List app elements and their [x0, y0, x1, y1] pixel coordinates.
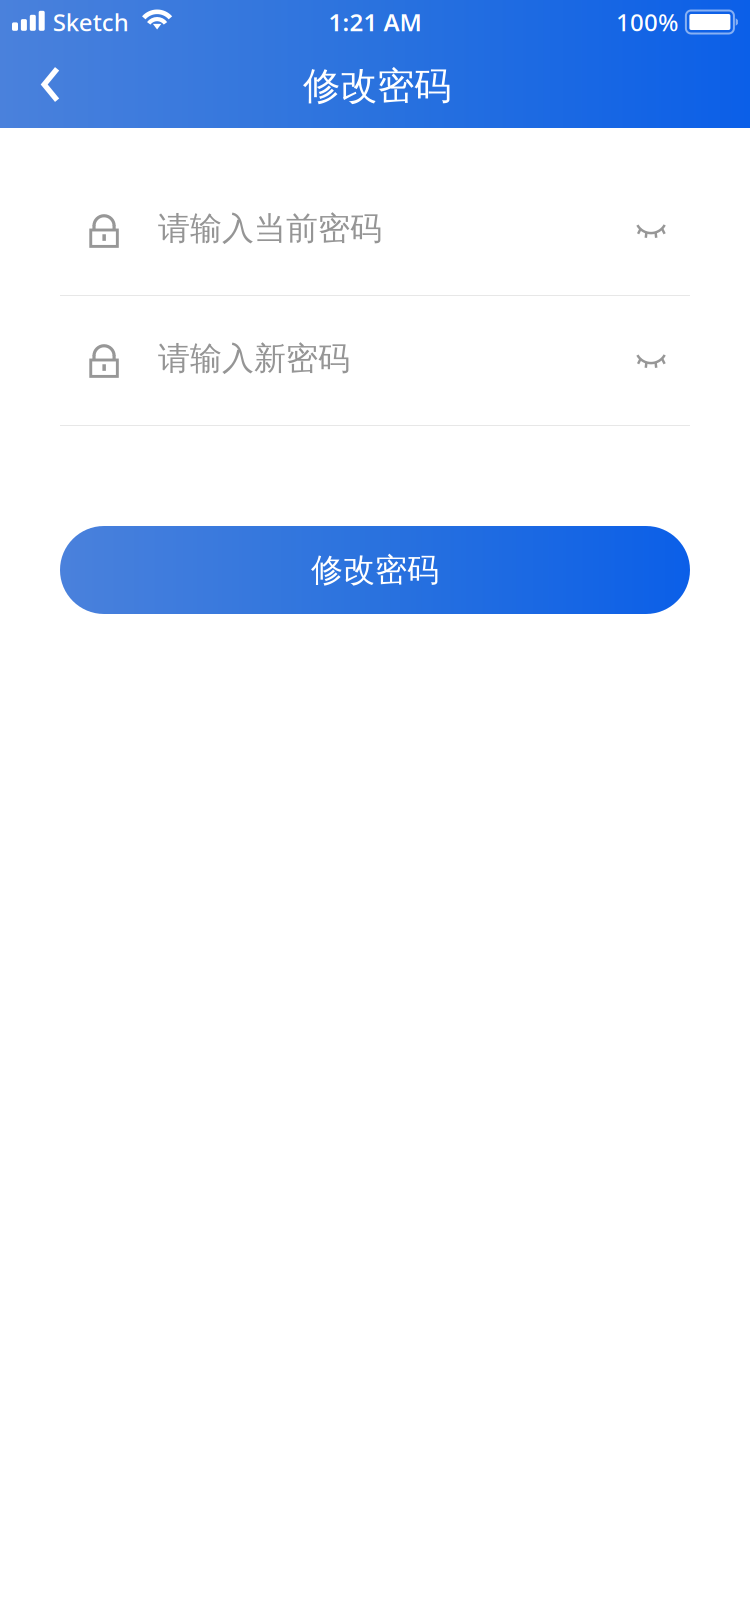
staticText: 100% — [616, 6, 678, 38]
button[interactable]: Back — [0, 44, 94, 128]
button[interactable]: Show password — [620, 330, 690, 390]
staticText: 修改密码 — [311, 550, 439, 590]
staticText: 修改密码 — [303, 63, 451, 109]
button[interactable]: 修改密码 — [60, 526, 690, 614]
staticText: 请输入新密码 — [158, 339, 350, 378]
staticText: 请输入当前密码 — [158, 209, 382, 248]
button[interactable]: Show password — [620, 200, 690, 260]
staticText: Sketch — [53, 6, 129, 38]
staticText: 1:21 AM — [328, 6, 421, 38]
